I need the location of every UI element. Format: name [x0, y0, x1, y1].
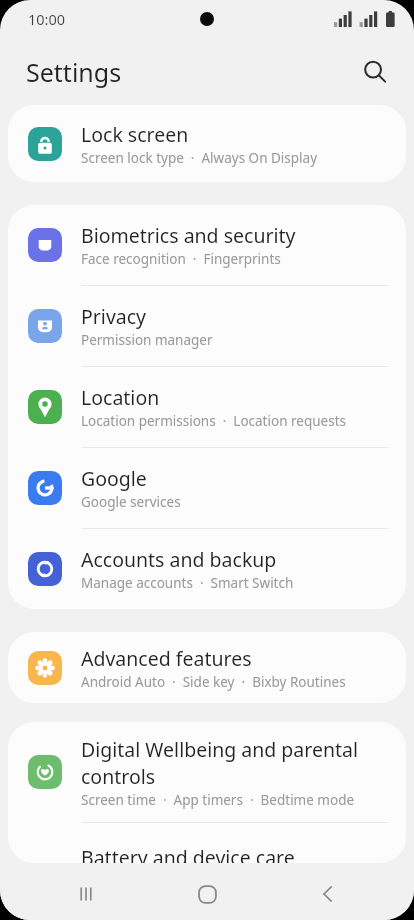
staticText: Battery and device care	[81, 844, 295, 863]
staticText: Location	[81, 384, 160, 411]
button[interactable]: Biometrics and security	[8, 205, 406, 285]
staticText: Google	[81, 465, 147, 492]
staticText: Permission manager	[81, 331, 213, 349]
button[interactable]: Advanced features	[8, 632, 406, 703]
staticText: Face recognition · Fingerprints	[81, 250, 281, 268]
staticText: controls	[81, 763, 156, 790]
staticText: 10:00	[28, 9, 66, 29]
button[interactable]: Lock screen	[8, 105, 406, 182]
staticText: Accounts and backup	[81, 546, 277, 573]
button[interactable]: Back	[293, 868, 363, 920]
staticText: Google services	[81, 493, 181, 511]
staticText: Android Auto · Side key · Bixby Routines	[81, 673, 346, 691]
staticText: Biometrics and security	[81, 222, 296, 249]
staticText: Privacy	[81, 303, 147, 330]
staticText: Settings	[26, 55, 122, 89]
button[interactable]: Battery and device care	[8, 823, 406, 863]
staticText: Screen lock type · Always On Display	[81, 149, 318, 167]
button[interactable]: Accounts and backup	[8, 529, 406, 609]
button[interactable]: Privacy	[8, 286, 406, 366]
button[interactable]: Recents	[51, 868, 121, 920]
button[interactable]: Home	[172, 868, 242, 920]
staticText: Manage accounts · Smart Switch	[81, 574, 294, 592]
staticText: Digital Wellbeing and parental	[81, 736, 359, 763]
staticText: Lock screen	[81, 121, 189, 148]
button[interactable]: Location	[8, 367, 406, 447]
button[interactable]: Digital Wellbeing and parental	[8, 722, 406, 822]
staticText: Location permissions · Location requests	[81, 412, 346, 430]
button[interactable]: Search	[352, 49, 398, 95]
button[interactable]: Google	[8, 448, 406, 528]
staticText: Screen time · App timers · Bedtime mode	[81, 791, 355, 809]
staticText: Advanced features	[81, 645, 252, 672]
